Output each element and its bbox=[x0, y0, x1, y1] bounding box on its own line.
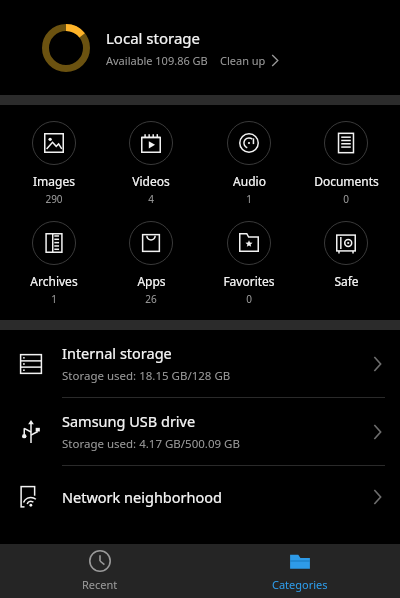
staticText: Samsung USB drive bbox=[62, 411, 196, 431]
staticText: Storage used: 4.17 GB/500.09 GB bbox=[62, 436, 240, 452]
staticText: Audio bbox=[233, 173, 266, 189]
staticText: Clean up bbox=[220, 53, 266, 68]
button[interactable]: Apps bbox=[108, 219, 194, 308]
button[interactable]: Network neighborhood bbox=[0, 466, 400, 528]
staticText: 4 bbox=[148, 192, 154, 206]
staticText: Available 109.86 GB bbox=[106, 53, 208, 68]
button[interactable]: Videos bbox=[108, 119, 194, 208]
staticText: Favorites bbox=[223, 273, 275, 289]
staticText: Documents bbox=[314, 173, 379, 189]
staticText: 0 bbox=[246, 292, 252, 306]
staticText: Categories bbox=[272, 577, 328, 592]
button[interactable]: Images bbox=[11, 119, 97, 208]
button[interactable]: Samsung USB drive bbox=[0, 398, 400, 466]
staticText: 0 bbox=[343, 192, 349, 206]
staticText: 26 bbox=[145, 292, 157, 306]
staticText: Videos bbox=[132, 173, 170, 189]
staticText: Recent bbox=[82, 577, 118, 592]
button[interactable]: Safe bbox=[303, 219, 389, 291]
staticText: Safe bbox=[334, 273, 359, 289]
staticText: Apps bbox=[137, 273, 166, 289]
staticText: Internal storage bbox=[62, 343, 172, 363]
staticText: 290 bbox=[45, 192, 63, 206]
staticText: Network neighborhood bbox=[62, 487, 222, 507]
button[interactable]: Internal storage bbox=[0, 330, 400, 398]
button[interactable]: Archives bbox=[11, 219, 97, 308]
staticText: Storage used: 18.15 GB/128 GB bbox=[62, 368, 231, 384]
button[interactable]: Documents bbox=[303, 119, 389, 208]
staticText: Archives bbox=[30, 273, 78, 289]
staticText: Images bbox=[33, 173, 75, 189]
staticText: 1 bbox=[246, 192, 252, 206]
staticText: 1 bbox=[51, 292, 57, 306]
button[interactable]: Favorites bbox=[206, 219, 292, 308]
button[interactable]: Audio bbox=[206, 119, 292, 208]
button[interactable]: Recent bbox=[0, 544, 200, 598]
button[interactable]: Clean up bbox=[208, 53, 279, 68]
button[interactable]: Categories bbox=[200, 544, 400, 598]
staticText: Local storage bbox=[106, 28, 200, 48]
